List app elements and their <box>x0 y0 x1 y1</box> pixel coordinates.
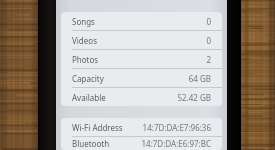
staticText: 0 <box>206 35 211 46</box>
staticText: Bluetooth <box>72 138 110 149</box>
button[interactable]: Available <box>61 88 222 106</box>
staticText: 52.42 GB <box>177 92 211 103</box>
staticText: Capacity <box>72 73 104 84</box>
button[interactable]: Photos <box>61 50 222 68</box>
staticText: Videos <box>72 35 97 46</box>
button[interactable]: Songs <box>61 12 222 30</box>
staticText: 14:7D:DA:E6:97:BC <box>141 138 211 149</box>
staticText: Photos <box>72 54 99 65</box>
button[interactable]: Bluetooth <box>61 137 222 150</box>
staticText: 64 GB <box>188 73 211 84</box>
button[interactable]: Capacity <box>61 69 222 87</box>
button[interactable]: Videos <box>61 31 222 49</box>
staticText: 2 <box>206 54 211 65</box>
staticText: 14:7D:DA:E7:96:36 <box>142 122 211 133</box>
staticText: Available <box>72 92 106 103</box>
staticText: Wi-Fi Address <box>72 122 123 133</box>
staticText: 0 <box>206 16 211 27</box>
button[interactable]: Wi-Fi Address <box>61 118 222 136</box>
staticText: Songs <box>72 16 95 27</box>
